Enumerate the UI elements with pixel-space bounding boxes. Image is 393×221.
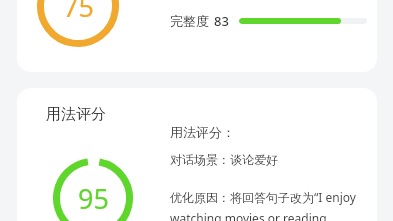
staticText: 用法评分 [46, 105, 106, 124]
staticText: 对话场景：谈论爱好 [170, 152, 278, 167]
button[interactable]: 75 [17, 0, 377, 72]
staticText: 用法评分： [170, 124, 235, 140]
staticText: 完整度 [170, 13, 209, 29]
staticText: 优化原因：将回答句子改为“I enjoy watching movies or … [170, 189, 377, 221]
staticText: 83 [214, 12, 229, 30]
staticText: 75 [63, 0, 94, 25]
staticText: 95 [78, 180, 109, 217]
button[interactable]: 用法评分 [17, 88, 377, 221]
